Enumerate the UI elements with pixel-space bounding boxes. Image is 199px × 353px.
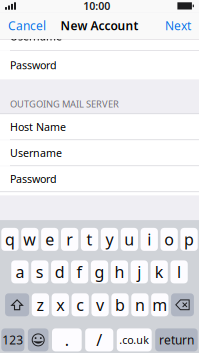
button[interactable]: r bbox=[61, 228, 78, 251]
staticText: v bbox=[96, 294, 104, 315]
button[interactable]: h bbox=[111, 260, 128, 283]
staticText: Cancel bbox=[8, 18, 46, 34]
staticText: OUTGOING MAIL SERVER bbox=[10, 98, 119, 110]
button[interactable]: w bbox=[21, 228, 38, 251]
button[interactable]: t bbox=[81, 228, 98, 251]
staticText: u bbox=[124, 229, 134, 250]
staticText: i bbox=[147, 229, 151, 250]
button[interactable]: g bbox=[91, 260, 108, 283]
staticText: 10:00 bbox=[83, 0, 110, 13]
staticText: k bbox=[155, 261, 164, 282]
button[interactable]: j bbox=[131, 260, 148, 283]
staticText: x bbox=[56, 294, 64, 315]
staticText: 123 bbox=[2, 332, 23, 348]
button[interactable]: q bbox=[1, 228, 19, 251]
button[interactable]: x bbox=[52, 293, 69, 316]
staticText: . bbox=[65, 329, 69, 350]
staticText: t bbox=[86, 229, 92, 250]
button[interactable]: Delete bbox=[171, 293, 194, 316]
button[interactable]: 123 bbox=[1, 328, 24, 351]
staticText: p bbox=[184, 229, 194, 250]
button[interactable]: k bbox=[151, 260, 168, 283]
staticText: Password bbox=[10, 172, 57, 186]
staticText: Next bbox=[165, 18, 191, 34]
button[interactable]: a bbox=[11, 260, 28, 283]
button[interactable]: Shift bbox=[5, 293, 29, 316]
button[interactable]: Username bbox=[0, 140, 199, 166]
button[interactable]: Password bbox=[0, 51, 199, 80]
staticText: n bbox=[135, 294, 145, 315]
staticText: c bbox=[76, 294, 84, 315]
button[interactable]: return bbox=[155, 328, 198, 351]
button[interactable]: f bbox=[71, 260, 88, 283]
button[interactable]: c bbox=[72, 293, 89, 316]
staticText: return bbox=[159, 332, 194, 348]
button[interactable]: d bbox=[51, 260, 68, 283]
staticText: r bbox=[66, 229, 73, 250]
button[interactable]: u bbox=[121, 228, 138, 251]
staticText: Username bbox=[10, 146, 62, 160]
button[interactable]: .co.uk bbox=[117, 328, 152, 351]
staticText: Host Name bbox=[10, 120, 66, 134]
staticText: New Account bbox=[60, 18, 138, 34]
button[interactable]: . bbox=[52, 328, 82, 351]
staticText: z bbox=[36, 294, 44, 315]
staticText: b bbox=[115, 294, 125, 315]
button[interactable]: s bbox=[31, 260, 48, 283]
button[interactable]: Password bbox=[0, 166, 199, 192]
staticText: Username bbox=[10, 29, 62, 43]
button[interactable]: v bbox=[91, 293, 109, 316]
staticText: e bbox=[45, 229, 54, 250]
staticText: o bbox=[164, 229, 174, 250]
button[interactable]: l bbox=[170, 260, 188, 283]
staticText: q bbox=[5, 229, 15, 250]
staticText: d bbox=[55, 261, 65, 282]
button[interactable]: y bbox=[101, 228, 118, 251]
staticText: .co.uk bbox=[119, 333, 149, 347]
staticText: l bbox=[177, 261, 181, 282]
button[interactable]: Host Name bbox=[0, 114, 199, 140]
staticText: g bbox=[94, 261, 104, 282]
staticText: / bbox=[96, 329, 102, 350]
button[interactable]: Emoji keyboard bbox=[28, 328, 48, 351]
button[interactable]: / bbox=[85, 328, 113, 351]
staticText: Password bbox=[10, 58, 57, 72]
staticText: f bbox=[77, 261, 83, 282]
staticText: w bbox=[23, 229, 36, 250]
staticText: y bbox=[105, 229, 113, 250]
button[interactable]: b bbox=[111, 293, 129, 316]
button[interactable]: o bbox=[160, 228, 178, 251]
button[interactable]: n bbox=[131, 293, 149, 316]
staticText: m bbox=[152, 294, 167, 315]
staticText: h bbox=[114, 261, 124, 282]
button[interactable]: z bbox=[32, 293, 49, 316]
button[interactable]: e bbox=[41, 228, 58, 251]
button[interactable]: p bbox=[180, 228, 198, 251]
staticText: s bbox=[36, 261, 44, 282]
button[interactable]: i bbox=[141, 228, 158, 251]
staticText: a bbox=[15, 261, 24, 282]
button[interactable]: Cancel bbox=[1, 12, 53, 39]
button[interactable]: m bbox=[151, 293, 168, 316]
staticText: j bbox=[137, 261, 141, 282]
button[interactable]: Next bbox=[158, 12, 198, 39]
